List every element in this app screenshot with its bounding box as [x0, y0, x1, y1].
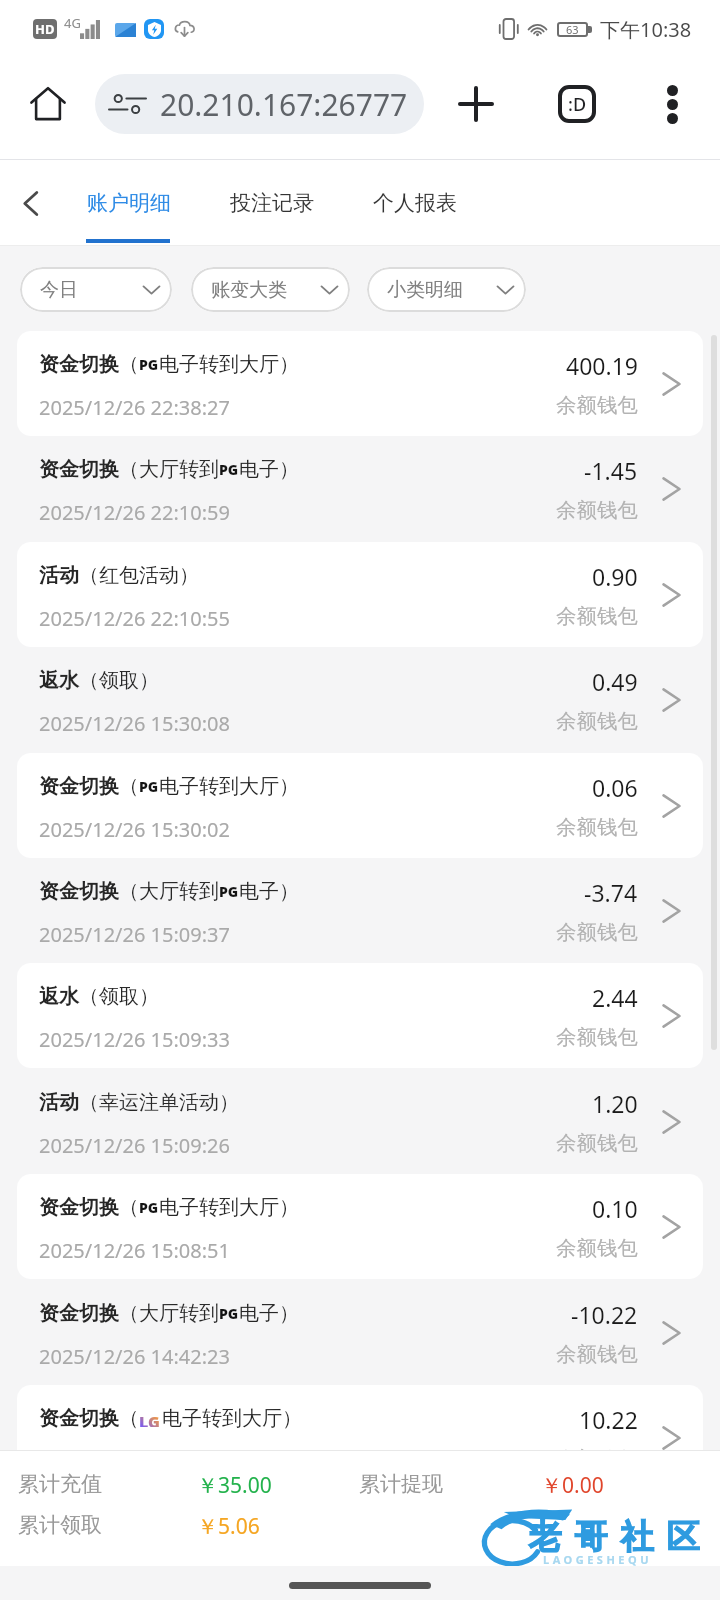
staticText: 63	[566, 22, 579, 37]
staticText: （	[79, 984, 99, 1009]
staticText: ￥5.06	[197, 1512, 260, 1541]
button[interactable]: 活动	[0, 1069, 720, 1174]
staticText: ）	[139, 984, 159, 1009]
staticText: 账户明细	[87, 190, 171, 216]
staticText: 投注记录	[230, 190, 314, 216]
button[interactable]: 资金切换	[0, 436, 720, 541]
staticText: （	[119, 1301, 139, 1326]
staticText: 资金切换	[39, 1406, 119, 1431]
staticText: 大厅转到	[139, 457, 219, 482]
button[interactable]: 活动	[17, 542, 703, 647]
staticText: 电子转到大厅	[159, 774, 279, 799]
staticText: 下午10:38	[600, 16, 692, 43]
staticText: 2.44	[592, 982, 638, 1013]
staticText: 今日	[40, 278, 78, 302]
button[interactable]: 资金切换	[17, 753, 703, 858]
staticText: PG	[139, 777, 159, 796]
staticText: （	[79, 668, 99, 693]
staticText: （	[119, 774, 139, 799]
staticText: ）	[279, 1195, 299, 1220]
staticText: 1.20	[592, 1088, 638, 1119]
staticText: 电子	[239, 879, 279, 904]
staticText: （	[79, 1090, 99, 1115]
staticText: 0.06	[592, 772, 638, 803]
staticText: 余额钱包	[556, 919, 638, 945]
staticText: 资金切换	[39, 774, 119, 799]
staticText: 大厅转到	[139, 1301, 219, 1326]
staticText: （	[79, 563, 99, 588]
staticText: PG	[219, 882, 239, 901]
staticText: -10.22	[571, 1299, 638, 1330]
staticText: （	[119, 457, 139, 482]
staticText: 2025/12/26 14:42:23	[39, 1343, 230, 1370]
button[interactable]: 今日	[20, 267, 172, 312]
button[interactable]: More options	[634, 66, 710, 142]
button[interactable]: 资金切换	[17, 1385, 703, 1450]
staticText: （	[119, 879, 139, 904]
button[interactable]: Tabs	[539, 66, 615, 142]
staticText: 余额钱包	[556, 708, 638, 734]
staticText: 电子转到大厅	[159, 352, 279, 377]
staticText: PG	[139, 355, 159, 374]
staticText: 电子	[239, 1301, 279, 1326]
staticText: 0.49	[592, 666, 638, 697]
button[interactable]: 20.210.167:26777	[95, 74, 424, 134]
button[interactable]: 账户明细	[61, 160, 196, 246]
staticText: 幸运注单活动	[99, 1090, 219, 1115]
staticText: 活动	[39, 1090, 79, 1115]
staticText: 400.19	[566, 350, 638, 381]
staticText: （	[119, 1406, 139, 1431]
button[interactable]: Back	[0, 160, 61, 246]
staticText: 电子	[239, 457, 279, 482]
staticText: 返水	[39, 668, 79, 693]
staticText: 4G	[64, 14, 81, 32]
staticText: 电子转到大厅	[159, 1195, 279, 1220]
staticText: ）	[282, 1406, 302, 1431]
staticText: 余额钱包	[556, 1341, 638, 1367]
button[interactable]: New tab	[438, 66, 514, 142]
staticText: :D	[568, 92, 587, 117]
button[interactable]: 个人报表	[348, 160, 482, 246]
staticText: LAOGESHEQU	[543, 1552, 653, 1567]
staticText: 20.210.167:26777	[160, 84, 408, 125]
button[interactable]: 账变大类	[191, 267, 350, 312]
staticText: ）	[139, 668, 159, 693]
button[interactable]: Home	[10, 66, 86, 142]
staticText: 2025/12/26 15:08:51	[39, 1237, 230, 1264]
staticText: 2025/12/26 15:09:33	[39, 1026, 230, 1053]
staticText: 活动	[39, 563, 79, 588]
staticText: 资金切换	[39, 879, 119, 904]
staticText: 返水	[39, 984, 79, 1009]
staticText: 2025/12/26 15:30:08	[39, 710, 230, 737]
staticText: ）	[279, 879, 299, 904]
staticText: 领取	[99, 668, 139, 693]
staticText: （	[119, 1195, 139, 1220]
button[interactable]: 小类明细	[367, 267, 526, 312]
staticText: ）	[279, 1301, 299, 1326]
button[interactable]: 返水	[17, 963, 703, 1068]
staticText: PG	[219, 1304, 239, 1323]
staticText: 领取	[99, 984, 139, 1009]
staticText: ￥35.00	[197, 1471, 272, 1500]
staticText: 累计充值	[18, 1471, 102, 1497]
button[interactable]: 资金切换	[17, 1174, 703, 1279]
button[interactable]: 资金切换	[0, 1280, 720, 1385]
staticText: 余额钱包	[556, 1130, 638, 1156]
staticText: 2025/12/26 22:10:59	[39, 499, 230, 526]
button[interactable]: 资金切换	[17, 331, 703, 436]
button[interactable]: 资金切换	[0, 858, 720, 963]
staticText: PG	[219, 460, 239, 479]
staticText: LG	[139, 1411, 160, 1427]
staticText: 小类明细	[387, 278, 463, 302]
staticText: ）	[179, 563, 199, 588]
staticText: 资金切换	[39, 1301, 119, 1326]
staticText: ￥0.00	[541, 1471, 604, 1500]
button[interactable]: 投注记录	[196, 160, 348, 246]
staticText: 2025/12/26 15:09:26	[39, 1132, 230, 1159]
staticText: 资金切换	[39, 352, 119, 377]
button[interactable]: 返水	[0, 647, 720, 752]
staticText: 账变大类	[211, 278, 287, 302]
staticText: 累计提现	[359, 1471, 443, 1497]
staticText: 余额钱包	[556, 814, 638, 840]
staticText: 累计领取	[18, 1512, 102, 1538]
